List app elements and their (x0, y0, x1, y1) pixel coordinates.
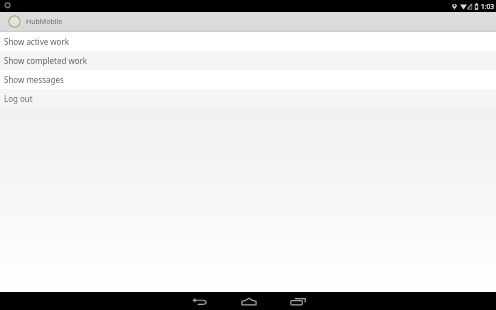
button[interactable]: HubMobile (0, 12, 71, 31)
button[interactable]: Recent apps (280, 292, 315, 310)
button[interactable]: Back (182, 292, 217, 310)
staticText: Show completed work (4, 55, 88, 66)
button[interactable]: Log out (0, 89, 496, 108)
button[interactable]: Show active work (0, 32, 496, 51)
button[interactable]: Home (231, 292, 266, 310)
other: Notification (0, 0, 12, 12)
button[interactable]: Show completed work (0, 51, 496, 70)
staticText: 1:03 (481, 2, 494, 11)
staticText: HubMobile (26, 17, 63, 27)
staticText: Log out (4, 93, 33, 104)
button[interactable]: Show messages (0, 70, 496, 89)
staticText: Show messages (4, 74, 64, 85)
staticText: Show active work (4, 36, 70, 47)
